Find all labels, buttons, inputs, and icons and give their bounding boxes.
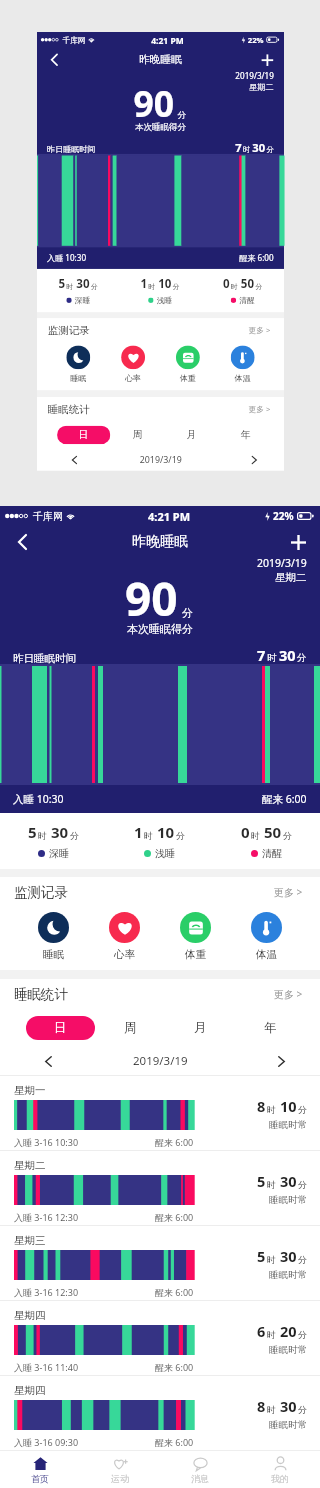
button[interactable]: Back: [0, 526, 44, 558]
button[interactable]: 更多 >: [245, 321, 274, 338]
button[interactable]: 星期三: [0, 1226, 320, 1300]
staticText: 睡眠时常: [269, 1194, 307, 1206]
staticText: 入睡 10:30: [13, 792, 64, 806]
button[interactable]: 星期四: [0, 1376, 320, 1450]
button[interactable]: Add: [276, 526, 320, 558]
button[interactable]: 体重: [160, 341, 215, 384]
staticText: 30: [280, 1171, 297, 1191]
staticText: 2019/3/19: [140, 454, 182, 467]
staticText: 时: [251, 830, 260, 841]
staticText: 20: [280, 1321, 297, 1341]
staticText: 日: [79, 429, 89, 441]
button[interactable]: Add: [250, 47, 284, 72]
button[interactable]: 月: [164, 426, 218, 444]
staticText: 我的: [271, 1473, 289, 1484]
button[interactable]: 体温: [215, 341, 270, 384]
button[interactable]: 月: [165, 1016, 235, 1040]
button[interactable]: Previous day: [34, 1047, 62, 1075]
button[interactable]: 1: [106, 813, 213, 869]
button[interactable]: 心率: [106, 341, 160, 384]
staticText: 入睡 3-16 12:30: [14, 1286, 79, 1298]
staticText: 入睡 3-16 10:30: [14, 1136, 79, 1148]
staticText: 日: [54, 1020, 67, 1036]
button[interactable]: 星期一: [0, 1076, 320, 1150]
button[interactable]: 星期二: [0, 1151, 320, 1225]
staticText: 50: [241, 276, 255, 291]
staticText: 10: [158, 276, 172, 291]
staticText: 睡眠统计: [14, 986, 68, 1003]
staticText: 30: [252, 139, 265, 155]
button[interactable]: 0: [213, 813, 320, 869]
staticText: 时: [267, 652, 277, 664]
staticText: 30: [51, 822, 69, 842]
staticText: 入睡 3-16 09:30: [14, 1436, 79, 1448]
staticText: 醒来 6:00: [155, 1436, 194, 1448]
button[interactable]: 心率: [89, 907, 160, 962]
button[interactable]: 睡眠: [18, 907, 89, 962]
staticText: 分: [173, 282, 180, 291]
button[interactable]: 睡眠: [51, 341, 106, 384]
staticText: 时: [267, 1329, 276, 1340]
staticText: 分: [298, 1104, 307, 1115]
staticText: 消息: [191, 1473, 209, 1484]
button[interactable]: 年: [218, 426, 272, 444]
staticText: 8: [257, 1396, 266, 1416]
staticText: 4:21 PM: [148, 509, 191, 524]
button[interactable]: 体温: [231, 907, 302, 962]
button[interactable]: 0: [201, 269, 284, 312]
staticText: 昨日睡眠时间: [47, 145, 96, 155]
button[interactable]: 我的: [240, 1451, 320, 1488]
button[interactable]: 更多 >: [245, 400, 274, 417]
button[interactable]: 更多 >: [270, 881, 307, 903]
button[interactable]: 5: [0, 813, 106, 869]
staticText: 运动: [111, 1473, 129, 1484]
staticText: 星期二: [275, 571, 307, 584]
button[interactable]: 周: [110, 426, 164, 444]
button[interactable]: Next day: [243, 450, 265, 470]
staticText: 分: [266, 145, 274, 154]
button[interactable]: 首页: [0, 1451, 80, 1488]
button[interactable]: Next day: [267, 1047, 295, 1075]
staticText: 浅睡: [155, 847, 175, 860]
button[interactable]: 更多 >: [270, 983, 307, 1005]
staticText: 2019/3/19: [257, 556, 307, 570]
staticText: 5: [257, 1246, 266, 1266]
staticText: 分: [177, 109, 186, 120]
staticText: 22%: [248, 34, 264, 45]
button[interactable]: 年: [235, 1016, 305, 1040]
staticText: 2019/3/19: [235, 71, 274, 81]
staticText: 年: [264, 1020, 277, 1036]
button[interactable]: 消息: [160, 1451, 240, 1488]
staticText: 昨晚睡眠: [132, 533, 188, 551]
staticText: 星期四: [14, 1309, 46, 1322]
staticText: 入睡 3-16 11:40: [14, 1361, 79, 1373]
staticText: 体温: [256, 948, 277, 961]
staticText: 千库网: [33, 510, 63, 523]
staticText: 浅睡: [157, 295, 172, 305]
button[interactable]: 运动: [80, 1451, 160, 1488]
staticText: 星期二: [14, 1159, 46, 1172]
staticText: 醒来 6:00: [262, 792, 307, 806]
staticText: 分: [176, 830, 185, 841]
staticText: 醒来 6:00: [155, 1211, 194, 1223]
button[interactable]: 星期四: [0, 1301, 320, 1375]
staticText: 时: [243, 145, 251, 154]
button[interactable]: 1: [119, 269, 201, 312]
staticText: 周: [133, 429, 143, 441]
button[interactable]: 周: [95, 1016, 165, 1040]
button[interactable]: Back: [37, 47, 71, 72]
button[interactable]: 5: [37, 269, 119, 312]
staticText: 睡眠: [70, 373, 86, 383]
staticText: 时: [148, 282, 155, 291]
staticText: 心率: [114, 948, 135, 961]
staticText: 星期二: [249, 82, 274, 92]
staticText: 10: [280, 1096, 297, 1116]
button[interactable]: Previous day: [63, 450, 85, 470]
staticText: 4:21 PM: [151, 34, 184, 46]
staticText: 1: [140, 276, 147, 291]
staticText: 更多 >: [274, 987, 303, 1001]
staticText: 千库网: [62, 35, 86, 45]
button[interactable]: 日: [26, 1016, 95, 1040]
button[interactable]: 体重: [160, 907, 231, 962]
button[interactable]: 日: [57, 426, 110, 444]
